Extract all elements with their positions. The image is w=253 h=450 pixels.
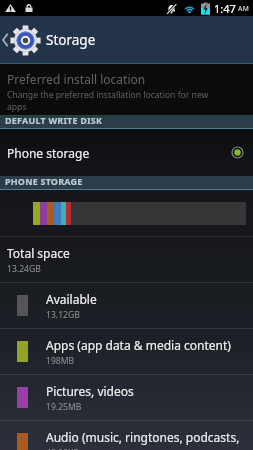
staticText: Available <box>46 291 97 307</box>
staticText: Pictures, videos <box>46 383 134 399</box>
staticText: 19.25MB <box>46 401 82 413</box>
staticText: 13.24GB <box>7 263 41 275</box>
button[interactable]: Available <box>0 283 253 328</box>
staticText: AM <box>238 4 249 14</box>
staticText: Apps (app data & media content) <box>46 337 231 353</box>
staticText: Total space <box>7 245 70 261</box>
staticText: Change the preferred installation locati… <box>7 89 229 113</box>
button[interactable]: Navigate up, Storage <box>0 16 96 64</box>
button[interactable]: Audio (music, ringtones, podcasts, <box>0 421 253 450</box>
staticText: 40.00KB <box>46 447 79 450</box>
button[interactable]: Preferred install location <box>0 64 253 115</box>
button[interactable]: Apps (app data & media content) <box>0 329 253 374</box>
staticText: PHONE STORAGE <box>5 175 83 187</box>
staticText: 13.12GB <box>46 309 80 321</box>
staticText: 1:47 <box>214 1 236 16</box>
staticText: Audio (music, ringtones, podcasts, <box>46 429 240 445</box>
button[interactable]: Phone storage <box>0 129 253 176</box>
staticText: Preferred install location <box>7 71 146 87</box>
staticText: Phone storage <box>7 145 90 161</box>
staticText: 198MB <box>46 355 75 367</box>
staticText: DEFAULT WRITE DISK <box>5 114 103 126</box>
staticText: Storage <box>46 31 96 49</box>
button[interactable]: Pictures, videos <box>0 375 253 420</box>
button[interactable]: Total space <box>0 237 253 282</box>
